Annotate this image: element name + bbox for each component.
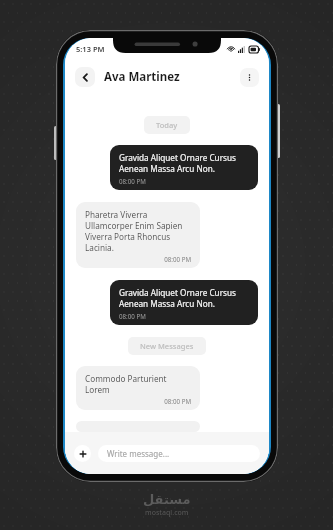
button[interactable]: Today [144,116,190,134]
staticText: Commodo Parturient Lorem [85,373,191,395]
button[interactable]: Commodo Parturient Lorem [76,366,200,410]
staticText: 08:00 PM [85,397,191,405]
staticText: New Messages [140,341,194,351]
staticText: mostaql.com [145,508,189,518]
button[interactable]: Write message... [98,445,260,462]
staticText: Pharetra Viverra Ullamcorper Enim Sapien… [85,209,191,253]
button[interactable]: Gravida Aliquet Ornare Cursus Aenean Mas… [110,145,258,190]
button[interactable]: Add attachment [74,445,91,462]
button[interactable]: Gravida Aliquet Ornare Cursus Aenean Mas… [110,280,258,325]
staticText: Gravida Aliquet Ornare Cursus Aenean Mas… [119,287,249,309]
button[interactable]: Back [75,67,95,87]
staticText: 08:00 PM [119,312,146,320]
button[interactable]: New Messages [128,337,206,355]
button[interactable]: More options [240,68,259,87]
staticText: مستقل [143,492,191,507]
staticText: Gravida Aliquet Ornare Cursus Aenean Mas… [119,152,249,174]
button[interactable]: Pharetra Viverra Ullamcorper Enim Sapien… [76,202,200,268]
staticText: Ava Martinez [104,69,240,85]
staticText: Today [156,120,178,130]
staticText: 5:13 PM [76,44,105,54]
staticText: 08:00 PM [85,255,191,263]
staticText: Write message... [107,448,170,459]
staticText: 08:00 PM [119,177,146,185]
